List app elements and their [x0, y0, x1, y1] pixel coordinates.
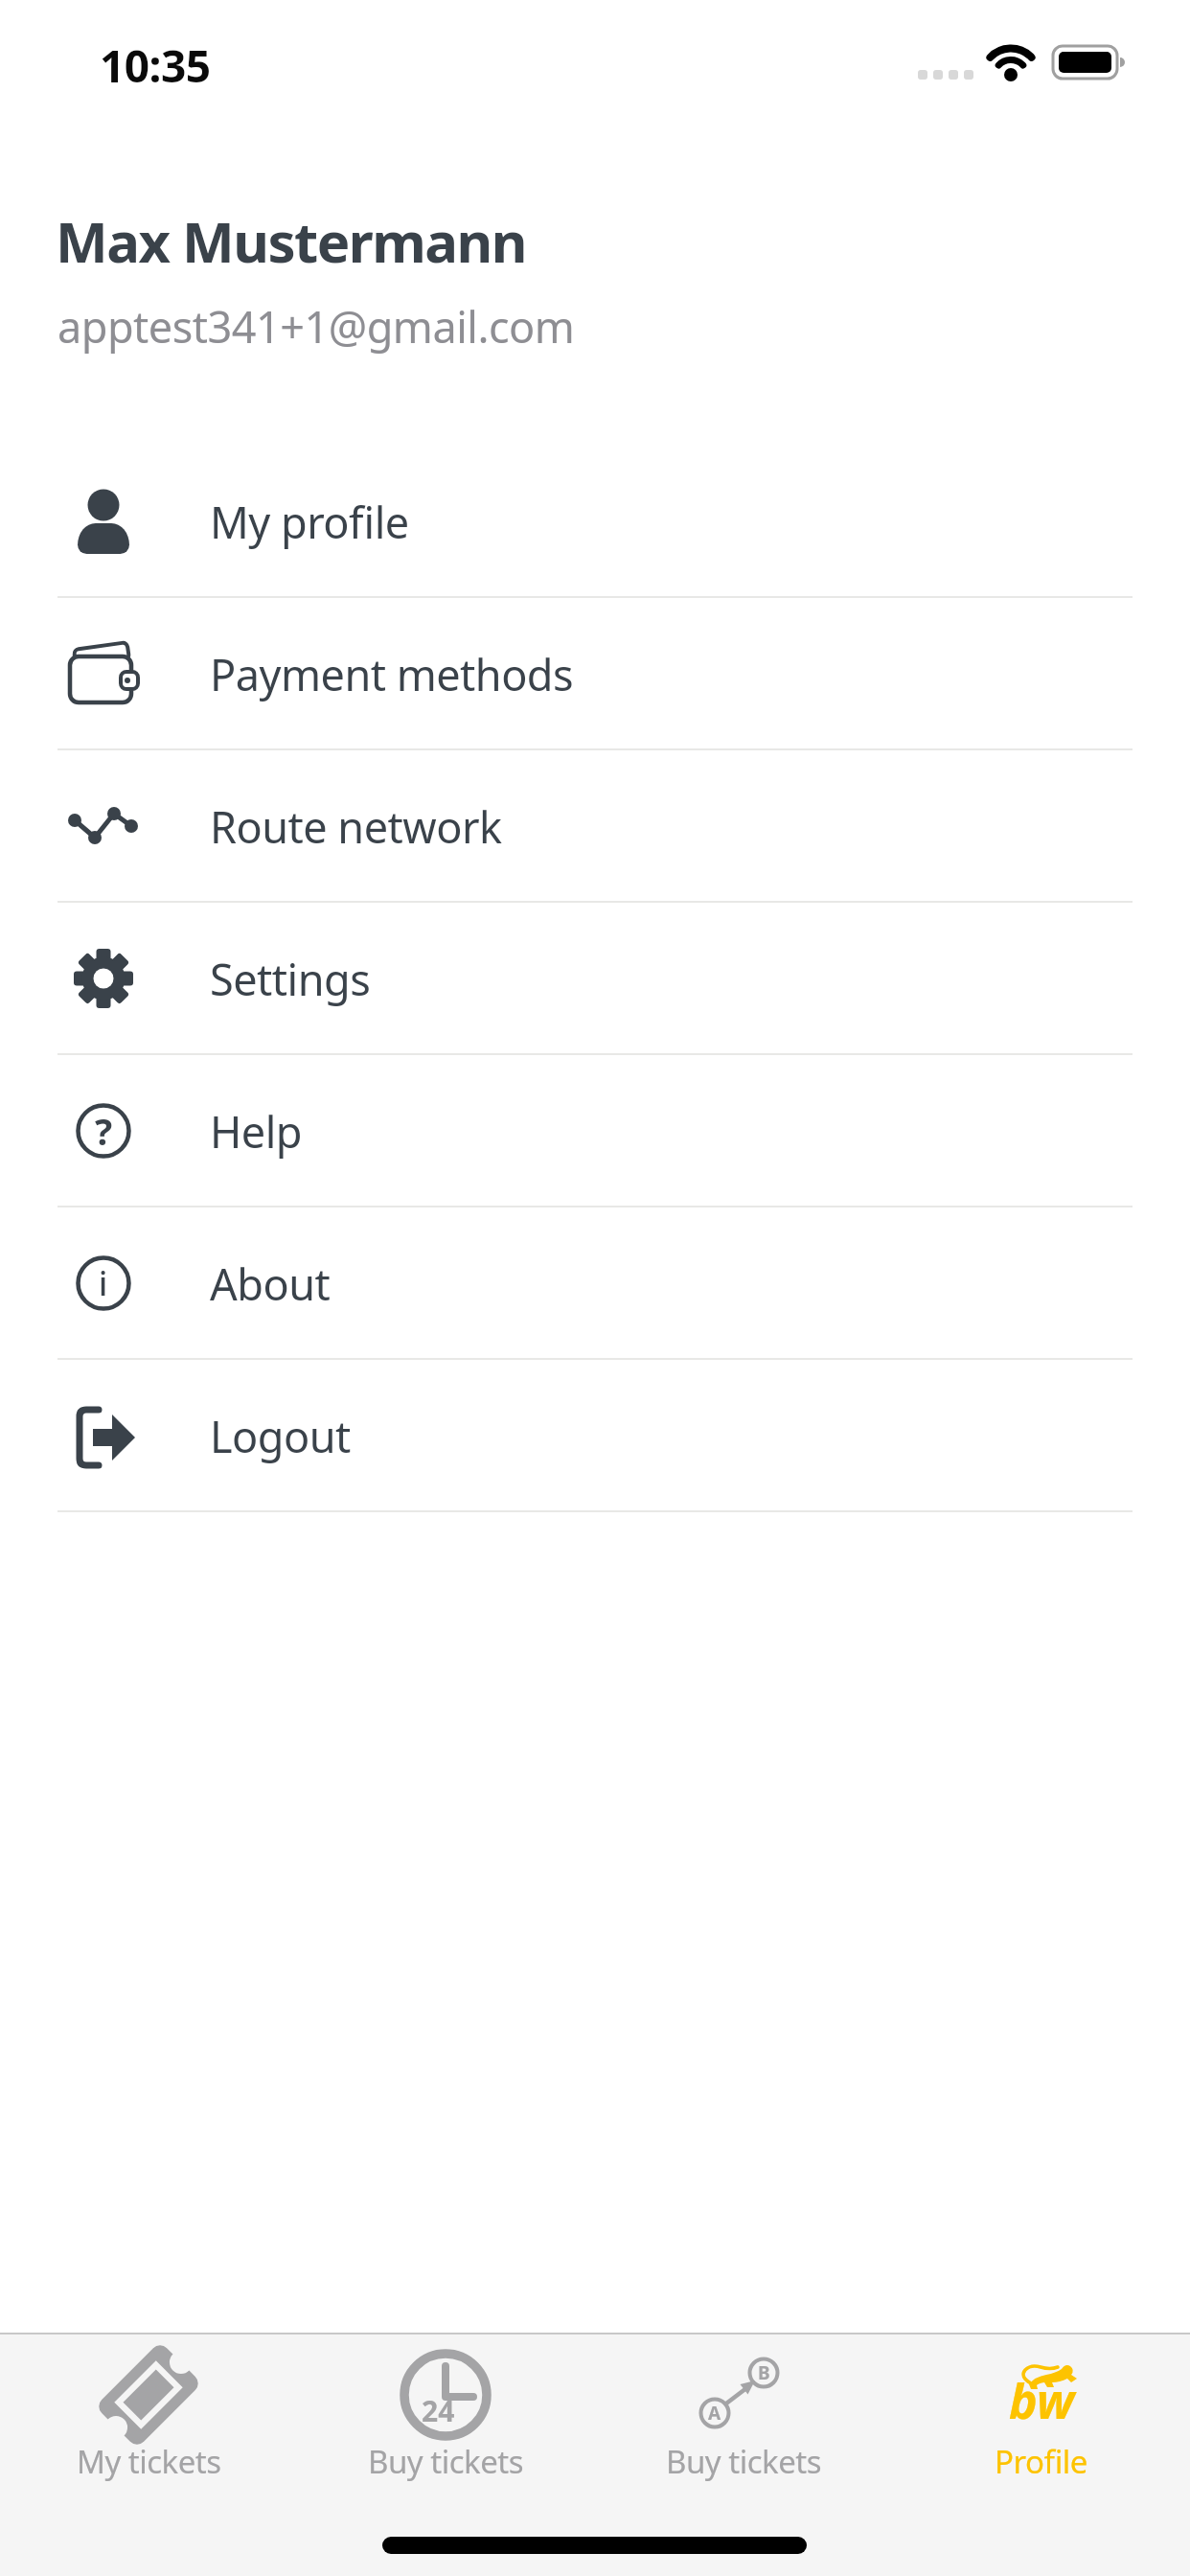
button[interactable]: A [594, 2333, 892, 2534]
staticText: Help [210, 1102, 303, 1161]
staticText: bw [1009, 2368, 1075, 2433]
button[interactable]: My profile [0, 446, 1190, 598]
button[interactable]: Settings [0, 903, 1190, 1055]
staticText: Buy tickets [666, 2440, 821, 2483]
button[interactable]: Logout [0, 1360, 1190, 1512]
staticText: i [99, 1261, 108, 1305]
button[interactable]: i [0, 1207, 1190, 1360]
button[interactable]: Payment methods [0, 598, 1190, 750]
staticText: Buy tickets [368, 2440, 523, 2483]
button[interactable]: 24 [297, 2333, 594, 2534]
button[interactable]: My tickets [0, 2333, 297, 2534]
staticText: Profile [995, 2440, 1087, 2483]
staticText: About [210, 1254, 331, 1313]
staticText: Max Mustermann [56, 203, 526, 279]
staticText: A [708, 2401, 721, 2426]
staticText: My profile [210, 493, 409, 551]
staticText: Logout [210, 1407, 351, 1465]
staticText: Settings [210, 950, 371, 1008]
staticText: Payment methods [210, 645, 574, 703]
staticText: apptest341+1@gmail.com [57, 297, 575, 356]
staticText: 10:35 [100, 35, 211, 96]
staticText: B [758, 2360, 770, 2385]
button[interactable]: bw [892, 2333, 1190, 2534]
button[interactable]: Route network [0, 750, 1190, 903]
button[interactable]: ? [0, 1055, 1190, 1207]
staticText: ? [95, 1106, 113, 1156]
staticText: Route network [210, 797, 502, 856]
staticText: 24 [422, 2391, 455, 2430]
staticText: My tickets [77, 2440, 221, 2483]
